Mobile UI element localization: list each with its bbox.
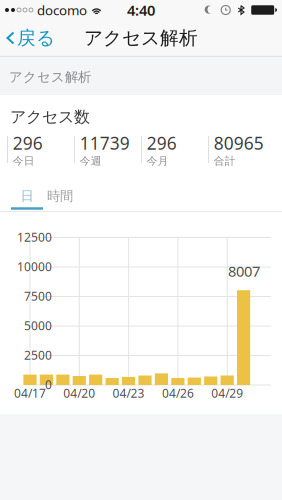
staticText: 今月 [147, 154, 169, 168]
staticText: 80965 [214, 131, 264, 154]
staticText: 戻る [17, 26, 55, 49]
staticText: 04/29 [211, 385, 243, 401]
button[interactable]: 時間 [44, 183, 76, 209]
staticText: アクセス解析 [9, 69, 91, 85]
staticText: 時間 [47, 188, 73, 204]
staticText: 8007 [228, 261, 260, 281]
staticText: docomo [37, 1, 87, 19]
staticText: 04/17 [14, 385, 46, 401]
staticText: アクセス解析 [84, 26, 198, 49]
staticText: 04/20 [63, 385, 95, 401]
staticText: 10000 [17, 258, 52, 274]
staticText: 合計 [214, 154, 236, 168]
staticText: 7500 [24, 288, 52, 304]
staticText: 04/23 [113, 385, 145, 401]
staticText: 11739 [80, 131, 130, 154]
staticText: 5000 [24, 317, 52, 333]
staticText: 4:40 [127, 0, 155, 20]
button[interactable]: 日 [11, 183, 43, 209]
button[interactable]: 戻る [0, 21, 63, 55]
staticText: 296 [13, 131, 43, 154]
staticText: 日 [20, 188, 33, 204]
staticText: 2500 [24, 347, 52, 363]
staticText: 296 [147, 131, 177, 154]
staticText: 今日 [13, 154, 35, 168]
staticText: 0 [45, 376, 52, 392]
staticText: 今週 [80, 154, 102, 168]
staticText: アクセス数 [10, 107, 90, 127]
staticText: 12500 [17, 229, 52, 245]
staticText: 04/26 [162, 385, 194, 401]
